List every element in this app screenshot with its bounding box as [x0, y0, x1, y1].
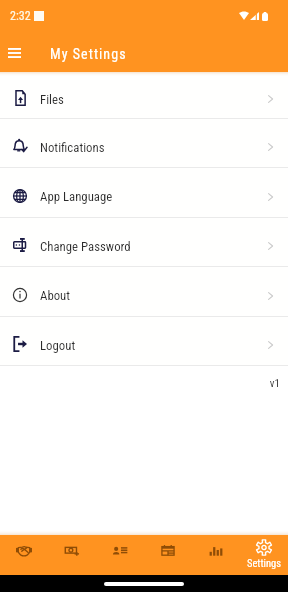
- button[interactable]: Deals: [0, 535, 48, 575]
- staticText: Change Password: [40, 239, 131, 254]
- staticText: Notifications: [40, 140, 105, 155]
- button[interactable]: App Language: [0, 168, 288, 217]
- staticText: Settings: [247, 557, 282, 569]
- button[interactable]: Settings: [240, 535, 288, 575]
- button[interactable]: Logout: [0, 317, 288, 365]
- button[interactable]: Notifications: [0, 119, 288, 167]
- staticText: About: [40, 288, 71, 303]
- staticText: My Settings: [50, 46, 127, 62]
- staticText: v1: [3, 377, 280, 390]
- button[interactable]: About: [0, 267, 288, 316]
- staticText: 2:32: [10, 9, 31, 23]
- button[interactable]: Reports: [192, 535, 240, 575]
- staticText: App Language: [40, 189, 113, 204]
- button[interactable]: Contacts: [96, 535, 144, 575]
- staticText: Files: [40, 92, 64, 107]
- staticText: Logout: [40, 338, 76, 353]
- button[interactable]: Files: [0, 72, 288, 118]
- button[interactable]: Payments: [48, 535, 96, 575]
- button[interactable]: Calendar: [144, 535, 192, 575]
- button[interactable]: Change Password: [0, 218, 288, 266]
- button[interactable]: Open navigation menu: [1, 40, 27, 66]
